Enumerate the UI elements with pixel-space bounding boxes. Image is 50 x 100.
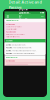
staticText: Object + be + V3 + by subject	[6, 33, 24, 35]
staticText: Negative Form	[6, 56, 17, 58]
staticText: The room is cleaned by him.	[13, 47, 31, 49]
staticText: He cleans the room.	[12, 44, 25, 46]
staticText: Detail: Active and Passive	[8, 0, 41, 10]
staticText: Examples	[6, 40, 13, 42]
staticText: Active:	[6, 44, 11, 46]
staticText: Passive:	[6, 47, 12, 49]
staticText: The students are taught by them.	[13, 53, 34, 54]
staticText: They teach the students everyday.	[12, 50, 36, 52]
staticText: Passive Voice	[6, 31, 16, 33]
button[interactable]: More options	[40, 14, 45, 19]
staticText: Active Voice	[6, 24, 15, 25]
staticText: English Grammar Handbook	[18, 7, 31, 25]
staticText: Affirmative Form	[6, 20, 18, 21]
button[interactable]: Menu	[5, 14, 10, 19]
staticText: Active:	[6, 50, 11, 52]
staticText: Subject + verb + object	[6, 26, 21, 28]
staticText: A letter is written by her.	[6, 36, 19, 38]
staticText: Active Voice	[6, 60, 15, 62]
staticText: She writes a letter.	[6, 28, 16, 30]
staticText: Passive:	[6, 53, 12, 54]
